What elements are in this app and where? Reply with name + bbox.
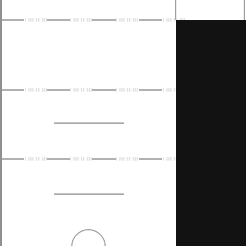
- button[interactable]: Add: [71, 229, 106, 246]
- button[interactable]: Detail: [54, 189, 124, 199]
- button[interactable]: [0, 153, 246, 165]
- button[interactable]: [0, 14, 246, 26]
- button[interactable]: [0, 84, 246, 96]
- button[interactable]: Detail: [54, 118, 124, 128]
